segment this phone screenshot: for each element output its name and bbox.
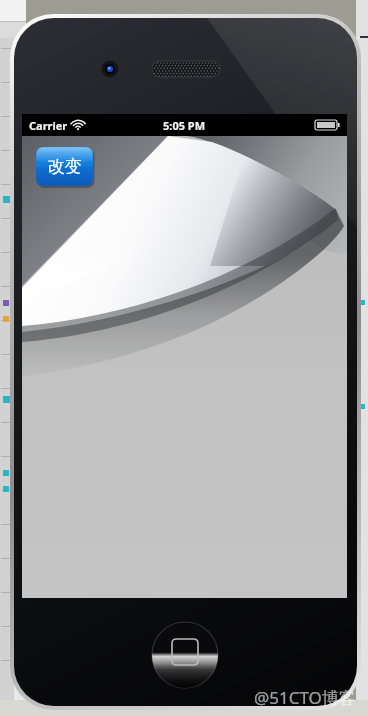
button[interactable]: 改变 <box>36 147 93 186</box>
button[interactable]: Home <box>152 622 218 688</box>
